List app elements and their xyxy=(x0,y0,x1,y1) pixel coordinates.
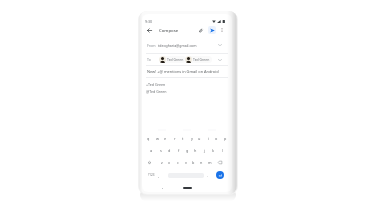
staticText: Ted Green xyxy=(193,57,210,62)
staticText: s xyxy=(160,148,162,153)
button[interactable]: ?123 xyxy=(146,170,156,180)
button[interactable]: e xyxy=(162,133,169,143)
button[interactable]: j xyxy=(201,145,208,155)
staticText: To xyxy=(147,57,151,62)
staticText: p xyxy=(224,136,227,141)
staticText: t xyxy=(182,136,184,141)
button[interactable]: l xyxy=(219,145,226,155)
staticText: g xyxy=(186,148,189,153)
staticText: . xyxy=(207,173,209,178)
button[interactable]: w xyxy=(154,133,161,143)
button[interactable]: Enter xyxy=(216,171,224,179)
button[interactable]: h xyxy=(192,145,199,155)
button[interactable]: , xyxy=(156,170,162,180)
button[interactable]: n xyxy=(198,157,205,167)
button[interactable]: k xyxy=(210,145,217,155)
button[interactable]: Back xyxy=(145,24,154,36)
staticText: @Ted Green xyxy=(146,89,167,94)
button[interactable]: b xyxy=(190,157,197,167)
button[interactable]: Switch keyboard xyxy=(159,185,165,191)
button[interactable]: x xyxy=(166,157,173,167)
button[interactable]: o xyxy=(213,133,220,143)
button[interactable]: g xyxy=(184,145,191,155)
staticText: w xyxy=(156,136,159,141)
staticText: y xyxy=(191,136,193,141)
staticText: l xyxy=(222,148,223,153)
staticText: , xyxy=(158,173,160,178)
staticText: z xyxy=(161,160,163,165)
button[interactable]: v xyxy=(182,157,189,167)
button[interactable]: m xyxy=(206,157,213,167)
button[interactable]: More options xyxy=(218,26,226,34)
button[interactable]: Ted Green xyxy=(159,56,184,63)
button[interactable]: p xyxy=(222,133,229,143)
button[interactable]: Send xyxy=(208,26,216,34)
staticText: +Ted Green xyxy=(146,82,166,87)
staticText: f xyxy=(178,148,180,153)
staticText: k xyxy=(212,148,215,153)
staticText: v xyxy=(185,160,187,165)
staticText: n xyxy=(200,160,203,165)
button[interactable]: Shift xyxy=(145,157,153,167)
staticText: r xyxy=(174,136,176,141)
button[interactable]: t xyxy=(179,133,186,143)
staticText: x xyxy=(168,160,171,165)
staticText: a xyxy=(150,148,153,153)
button[interactable]: Ted Green xyxy=(185,56,210,63)
button[interactable]: From xyxy=(142,37,232,53)
staticText: 9:30 xyxy=(145,19,153,24)
staticText: b xyxy=(192,160,195,165)
button[interactable]: New! +@ mentions in Gmail on Android xyxy=(142,65,232,77)
staticText: ?123 xyxy=(148,173,155,177)
staticText: Ted Green xyxy=(167,57,184,62)
button[interactable]: r xyxy=(171,133,178,143)
button[interactable]: y xyxy=(188,133,195,143)
button[interactable]: Backspace xyxy=(216,157,224,167)
staticText: From xyxy=(147,43,156,48)
button[interactable]: a xyxy=(148,145,155,155)
button[interactable]: Attach file xyxy=(196,26,205,35)
staticText: e xyxy=(164,136,167,141)
staticText: New! +@ mentions in Gmail on Android xyxy=(147,69,219,74)
button[interactable]: s xyxy=(157,145,164,155)
button[interactable]: d xyxy=(166,145,173,155)
button[interactable]: z xyxy=(158,157,165,167)
staticText: j xyxy=(204,148,205,153)
staticText: h xyxy=(194,148,197,153)
staticText: c xyxy=(177,160,179,165)
button[interactable]: q xyxy=(145,133,152,143)
staticText: tdeogharia@gmail.com xyxy=(158,43,197,48)
staticText: Compose xyxy=(159,27,179,33)
button[interactable]: c xyxy=(174,157,181,167)
button[interactable]: u xyxy=(196,133,203,143)
staticText: q xyxy=(147,136,150,141)
staticText: o xyxy=(215,136,218,141)
button[interactable]: f xyxy=(175,145,182,155)
button[interactable]: . xyxy=(205,170,211,180)
staticText: d xyxy=(168,148,171,153)
staticText: i xyxy=(208,136,209,141)
staticText: u xyxy=(198,136,201,141)
staticText: m xyxy=(208,160,212,165)
button[interactable]: i xyxy=(205,133,212,143)
